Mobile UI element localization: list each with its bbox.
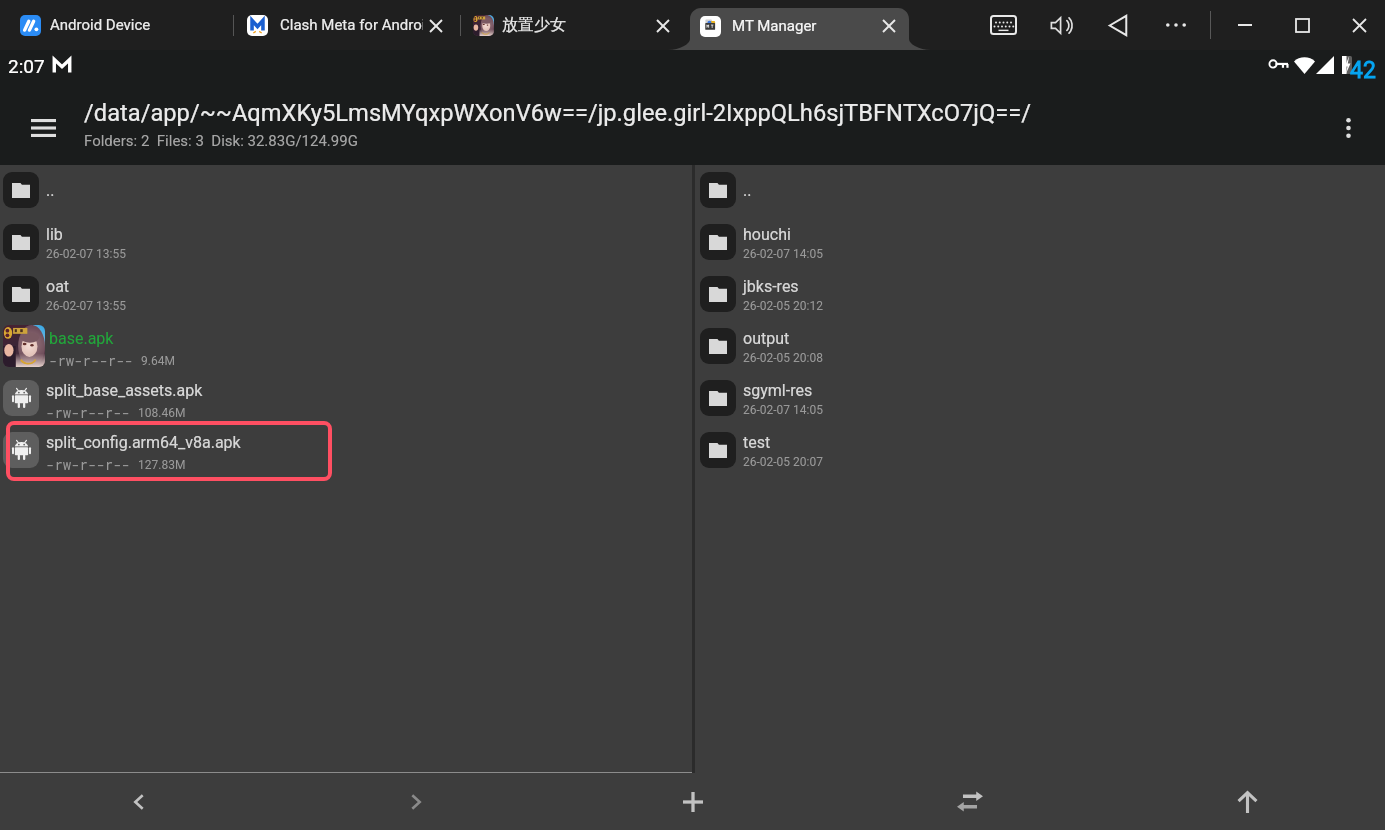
- staticText: 26-02-05 20:08: [743, 351, 823, 365]
- button[interactable]: oat: [0, 268, 692, 320]
- button[interactable]: Volume: [1038, 2, 1084, 48]
- staticText: Folders: 2 Files: 3 Disk: 32.83G/124.99G: [84, 132, 358, 150]
- staticText: /data/app/~~AqmXKy5LmsMYqxpWXonV6w==/jp.…: [84, 99, 1032, 127]
- button[interactable]: lib: [0, 216, 692, 268]
- staticText: -rw-r--r--: [49, 351, 134, 369]
- button[interactable]: ..: [0, 164, 692, 216]
- staticText: ..: [46, 181, 55, 200]
- button[interactable]: Back: [59, 773, 219, 830]
- button[interactable]: MT Manager: [690, 8, 909, 50]
- staticText: -rw-r--r--: [46, 455, 131, 473]
- button[interactable]: Maximize: [1279, 2, 1325, 48]
- staticText: 26-02-07 13:55: [46, 247, 126, 261]
- staticText: houchi: [743, 225, 791, 244]
- button[interactable]: More options: [1153, 2, 1199, 48]
- staticText: -rw-r--r--: [46, 403, 131, 421]
- button[interactable]: houchi: [695, 216, 1385, 268]
- staticText: 26-02-07 13:55: [46, 299, 126, 313]
- staticText: lib: [46, 225, 63, 244]
- button[interactable]: Close tab: [647, 10, 679, 42]
- button[interactable]: ..: [695, 164, 1385, 216]
- staticText: base.apk: [49, 329, 114, 348]
- button[interactable]: Back: [1095, 2, 1141, 48]
- button[interactable]: Menu: [18, 103, 68, 153]
- staticText: test: [743, 433, 771, 452]
- button[interactable]: Close tab: [420, 10, 452, 42]
- staticText: jbks-res: [743, 277, 799, 296]
- button[interactable]: Keyboard: [980, 2, 1026, 48]
- staticText: Clash Meta for Android: [280, 16, 423, 34]
- button[interactable]: Forward: [336, 773, 496, 830]
- button[interactable]: New: [613, 773, 773, 830]
- staticText: 9.64M: [141, 354, 175, 368]
- button[interactable]: More options: [1325, 105, 1371, 151]
- staticText: 26-02-07 14:05: [743, 403, 823, 417]
- staticText: MT Manager: [732, 17, 817, 35]
- staticText: oat: [46, 277, 70, 296]
- button[interactable]: Close window: [1336, 2, 1382, 48]
- button[interactable]: Clash Meta for Android: [239, 0, 454, 50]
- button[interactable]: Up: [1167, 773, 1327, 830]
- staticText: output: [743, 329, 790, 348]
- staticText: 2:07: [8, 55, 45, 77]
- button[interactable]: sgyml-res: [695, 372, 1385, 424]
- button[interactable]: output: [695, 320, 1385, 372]
- button[interactable]: Android Device: [12, 0, 227, 50]
- staticText: 放置少女: [502, 15, 566, 35]
- button[interactable]: 放置少女: [466, 0, 681, 50]
- button[interactable]: Minimize: [1222, 2, 1268, 48]
- staticText: 127.83M: [138, 458, 186, 472]
- staticText: split_config.arm64_v8a.apk: [46, 433, 241, 452]
- staticText: split_base_assets.apk: [46, 381, 203, 400]
- button[interactable]: base.apk: [0, 320, 692, 372]
- staticText: 26-02-07 14:05: [743, 247, 823, 261]
- staticText: 26-02-05 20:12: [743, 299, 823, 313]
- staticText: ..: [743, 181, 752, 200]
- staticText: 26-02-05 20:07: [743, 455, 823, 469]
- staticText: sgyml-res: [743, 381, 813, 400]
- button[interactable]: split_config.arm64_v8a.apk: [0, 424, 692, 476]
- staticText: 108.46M: [138, 406, 186, 420]
- button[interactable]: jbks-res: [695, 268, 1385, 320]
- staticText: Android Device: [50, 16, 151, 34]
- button[interactable]: test: [695, 424, 1385, 476]
- button[interactable]: Switch panel: [890, 773, 1050, 830]
- staticText: 42: [1350, 57, 1376, 84]
- button[interactable]: Close tab: [873, 10, 905, 42]
- button[interactable]: split_base_assets.apk: [0, 372, 692, 424]
